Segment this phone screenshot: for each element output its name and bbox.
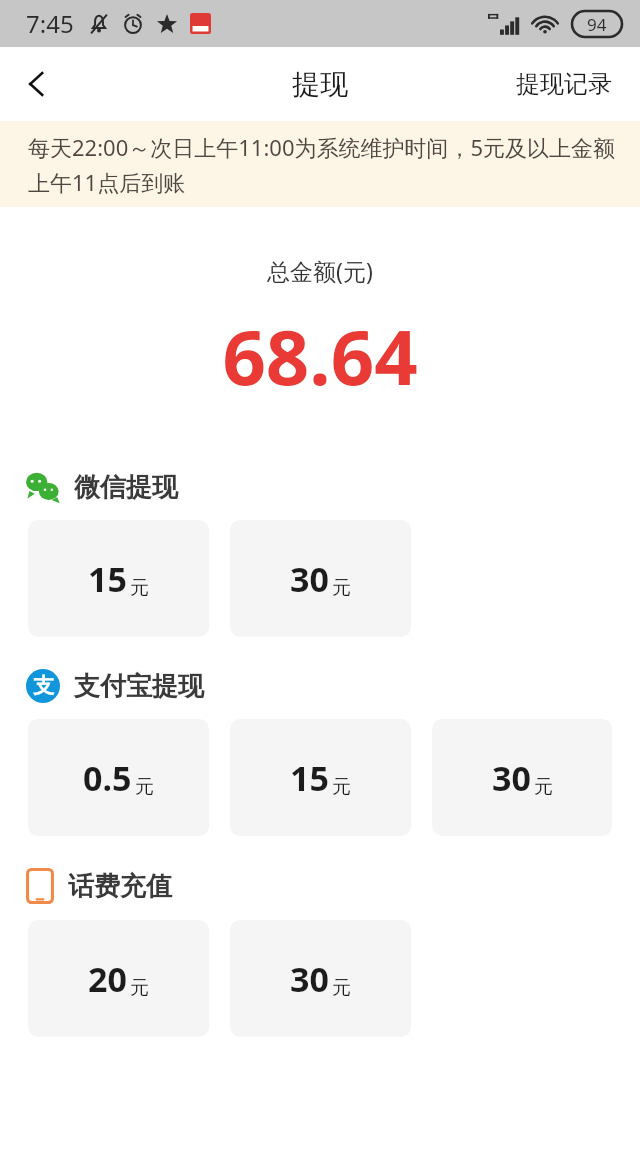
staticText: 元 xyxy=(130,576,149,600)
button[interactable]: 提现记录 xyxy=(488,47,640,121)
staticText: 68.64 xyxy=(222,304,418,408)
staticText: 提现 xyxy=(292,67,348,102)
staticText: 0.5 xyxy=(83,755,132,801)
staticText: 30 xyxy=(492,755,531,801)
staticText: 提现记录 xyxy=(516,69,612,99)
button[interactable]: 30 xyxy=(230,920,411,1037)
staticText: 15 xyxy=(88,556,127,602)
button[interactable]: 返回 xyxy=(0,47,74,121)
staticText: 元 xyxy=(332,775,351,799)
staticText: 元 xyxy=(135,775,154,799)
button[interactable]: 30 xyxy=(432,719,612,836)
button[interactable]: 0.5 xyxy=(28,719,209,836)
staticText: 元 xyxy=(332,576,351,600)
staticText: 20 xyxy=(88,956,127,1002)
staticText: 30 xyxy=(290,556,329,602)
staticText: 支付宝提现 xyxy=(74,670,204,703)
staticText: 元 xyxy=(534,775,553,799)
button[interactable]: 30 xyxy=(230,520,411,637)
staticText: 7:45 xyxy=(26,7,74,40)
button[interactable]: 20 xyxy=(28,920,209,1037)
staticText: 微信提现 xyxy=(74,471,178,504)
button[interactable]: 15 xyxy=(28,520,209,637)
staticText: 元 xyxy=(332,976,351,1000)
staticText: 总金额(元) xyxy=(267,255,373,286)
staticText: 元 xyxy=(130,976,149,1000)
staticText: 15 xyxy=(290,755,329,801)
button[interactable]: 15 xyxy=(230,719,411,836)
staticText: 话费充值 xyxy=(68,870,172,903)
staticText: 每天22:00～次日上午11:00为系统维护时间，5元及以上金额上午11点后到账 xyxy=(28,132,616,197)
staticText: 支 xyxy=(33,673,54,699)
staticText: 30 xyxy=(290,956,329,1002)
staticText: 94 xyxy=(587,13,607,36)
